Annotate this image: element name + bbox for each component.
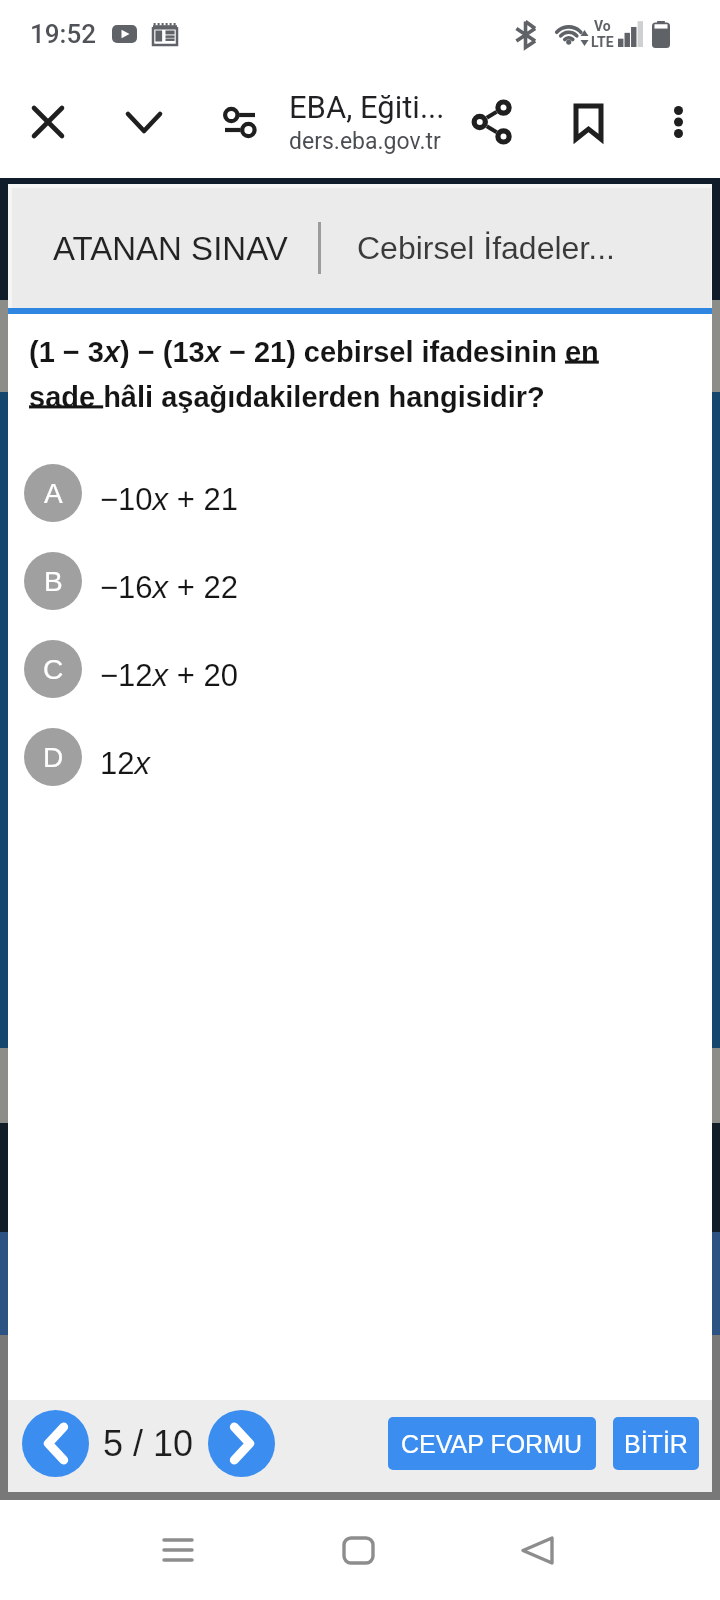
button[interactable]: Bookmark	[540, 66, 636, 178]
staticText: −16x + 22	[100, 570, 238, 605]
button[interactable]: C	[8, 625, 712, 713]
staticText: C	[43, 654, 64, 685]
button[interactable]: Share	[444, 66, 540, 178]
staticText: 19:52	[30, 19, 96, 49]
button[interactable]: Recent apps	[118, 1500, 238, 1600]
staticText: D	[43, 742, 64, 773]
button[interactable]: Site information	[192, 66, 288, 178]
staticText: CEVAP FORMU	[401, 1430, 583, 1458]
staticText: −10x + 21	[100, 482, 238, 517]
button[interactable]: CEVAP FORMU	[388, 1417, 596, 1470]
button[interactable]: Expand	[96, 66, 192, 178]
staticText: EBA, Eğiti...	[289, 89, 445, 125]
button[interactable]: Home	[298, 1500, 418, 1600]
staticText: 12x	[100, 746, 150, 781]
button[interactable]: B	[8, 537, 712, 625]
staticText: BİTİR	[624, 1430, 688, 1458]
staticText: LTE	[591, 34, 614, 50]
button[interactable]: Next question	[208, 1410, 275, 1477]
button[interactable]: D	[8, 713, 712, 801]
staticText: Vo	[594, 18, 611, 34]
button[interactable]: More options	[636, 66, 720, 178]
staticText: A	[44, 478, 63, 509]
staticText: ders.eba.gov.tr	[289, 128, 441, 155]
button[interactable]: Back	[477, 1500, 597, 1600]
button[interactable]: Previous question	[22, 1410, 89, 1477]
staticText: ATANAN SINAV	[53, 230, 288, 267]
staticText: 5 / 10	[103, 1423, 194, 1463]
button[interactable]: Close	[0, 66, 96, 178]
staticText: Cebirsel İfadeler...	[357, 230, 615, 266]
button[interactable]: BİTİR	[613, 1417, 699, 1470]
staticText: (1 − 3x) − (13x − 21) cebirsel ifadesini…	[29, 336, 616, 413]
staticText: −12x + 20	[100, 658, 238, 693]
button[interactable]: A	[8, 449, 712, 537]
staticText: B	[44, 566, 63, 597]
button[interactable]: EBA, Eğiti...	[289, 89, 469, 155]
